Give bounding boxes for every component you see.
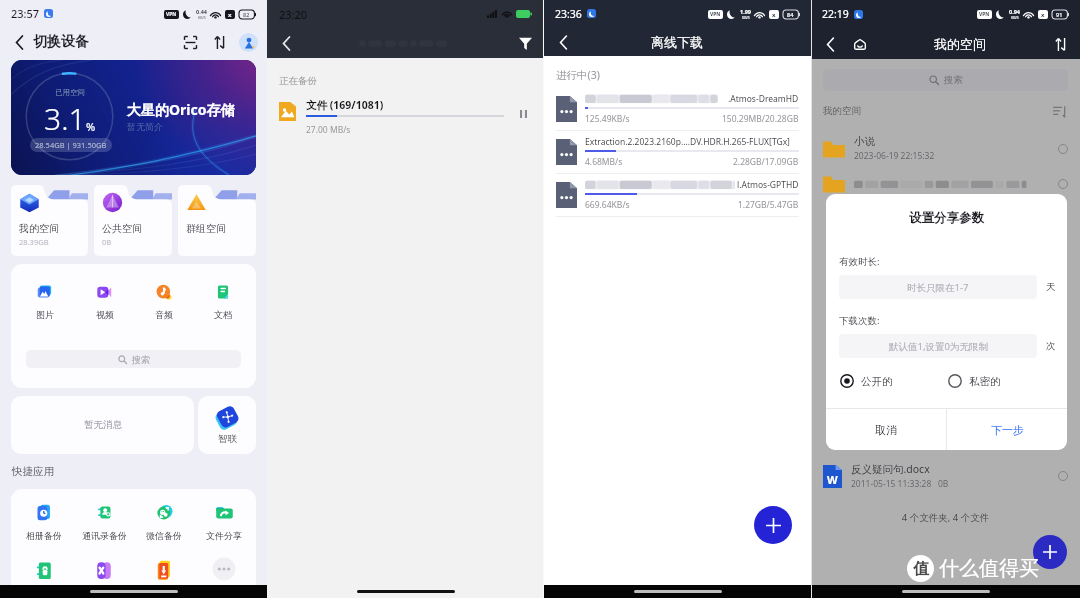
button[interactable]: Back [275,32,297,54]
staticText: 次 [1046,340,1056,352]
staticText: W [827,472,838,487]
button[interactable]: 取消 [826,409,946,450]
staticText: 91 [1056,11,1063,18]
staticText: 离线下载 [651,34,703,50]
button[interactable]: Sort [1050,102,1068,120]
staticText: 微信备份 [146,530,182,541]
staticText: 私密的 [969,375,1001,388]
button[interactable]: Profile [239,33,258,52]
button[interactable]: 已用空间 [11,60,256,175]
button[interactable] [74,556,134,582]
staticText: 文件分享 [206,530,242,541]
button[interactable] [194,556,254,582]
staticText: % [86,119,96,134]
button[interactable]: 文档 [193,281,252,320]
button[interactable]: 搜索 [26,350,241,368]
button[interactable]: 文件分享 [194,501,254,541]
staticText: 文档 [214,309,232,320]
staticText: 公共空间 [102,222,142,235]
staticText: 2023-06-19 22:15:32 [854,150,935,162]
button[interactable] [823,174,1068,194]
staticText: 切换设备 [33,33,89,51]
staticText: 125.49KB/s [585,113,630,125]
staticText: 0.94 [1009,8,1020,15]
staticText: 图片 [36,309,54,320]
button[interactable]: 搜索 [823,69,1068,91]
staticText: 2011-05-15 11:33:28 0B [851,478,949,490]
staticText: x [1041,11,1045,19]
staticText: 22:19 [822,7,849,21]
button[interactable]: Add download [754,506,792,544]
button[interactable]: l.Atmos-GPTHD [556,179,799,211]
button[interactable]: 音频 [134,281,193,320]
button[interactable]: 下一步 [947,409,1067,450]
button[interactable]: 文件 (169/1081) [279,98,532,136]
staticText: 时长只限在1-7 [907,281,969,294]
button[interactable]: 微信备份 [134,501,194,541]
button[interactable]: 时长只限在1-7 [839,275,1037,299]
staticText: 669.64KB/s [585,199,630,211]
staticText: .Atmos-DreamHD [728,93,799,105]
button[interactable]: 视频 [75,281,134,320]
button[interactable]: Pause [514,105,532,123]
staticText: 文件 (169/1081) [306,98,384,112]
staticText: 进行中(3) [556,68,600,82]
button[interactable]: 小说 [823,135,1068,162]
staticText: 暂无简介 [127,121,163,132]
staticText: 28.54GB | 931.50GB [35,140,107,150]
staticText: 4 个文件夹, 4 个文件 [811,511,1080,524]
staticText: 下载次数: [839,314,880,327]
button[interactable]: .Atmos-DreamHD [556,93,799,125]
button[interactable]: 图片 [15,281,75,320]
button[interactable]: Back [819,33,841,55]
button[interactable]: 我的空间 [11,185,88,256]
button[interactable]: Home [849,33,871,55]
staticText: 通讯录备份 [82,530,127,541]
staticText: 反义疑问句.docx [851,462,930,476]
staticText: 视频 [96,309,114,320]
button[interactable]: 暂无消息 [11,396,194,454]
staticText: 值 [913,559,929,579]
staticText: 我的空间 [19,222,59,235]
staticText: 暂无消息 [84,419,122,431]
staticText: 150.29MB/20.28GB [722,113,799,125]
button[interactable]: Transfer list [1050,33,1072,55]
staticText: 相册备份 [26,530,62,541]
button[interactable]: 公共空间 [94,185,172,256]
staticText: 音频 [155,309,173,320]
button[interactable]: 默认值1,设置0为无限制 [839,334,1037,358]
staticText: l.Atmos-GPTHD [737,179,799,191]
staticText: 3.1 [44,98,86,139]
button[interactable] [13,556,74,582]
staticText: 默认值1,设置0为无限制 [889,340,988,353]
staticText: x [772,11,776,19]
button[interactable]: 相册备份 [13,501,74,541]
button[interactable]: 私密的 [948,374,1057,388]
staticText: 0.44 [196,8,207,15]
button[interactable]: 公开的 [840,374,948,388]
staticText: 小说 [854,135,875,148]
staticText: 公开的 [861,375,893,388]
staticText: 1.99 [740,8,751,15]
staticText: x [228,11,232,19]
button[interactable]: 通讯录备份 [74,501,134,541]
button[interactable]: Add [1033,535,1067,569]
staticText: 27.00 MB/s [306,124,351,136]
staticText: 天 [1046,281,1056,293]
staticText: VPN [710,11,721,18]
staticText: KB/S [1011,15,1019,20]
staticText: VPN [979,11,990,18]
button[interactable] [134,556,194,582]
button[interactable]: 群组空间 [178,185,256,256]
button[interactable]: Scan [179,31,201,53]
staticText: 搜索 [944,74,963,86]
button[interactable]: W [823,462,1068,490]
button[interactable]: Extraction.2.2023.2160p....DV.HDR.H.265-… [556,136,799,168]
staticText: KB/S [742,15,750,20]
staticText: 23:57 [11,6,40,21]
button[interactable]: Transfer list [209,31,231,53]
button[interactable]: 智联 [198,396,256,454]
button[interactable]: Filter [514,32,536,54]
button[interactable]: Back [9,32,29,52]
button[interactable]: Back [552,31,574,53]
